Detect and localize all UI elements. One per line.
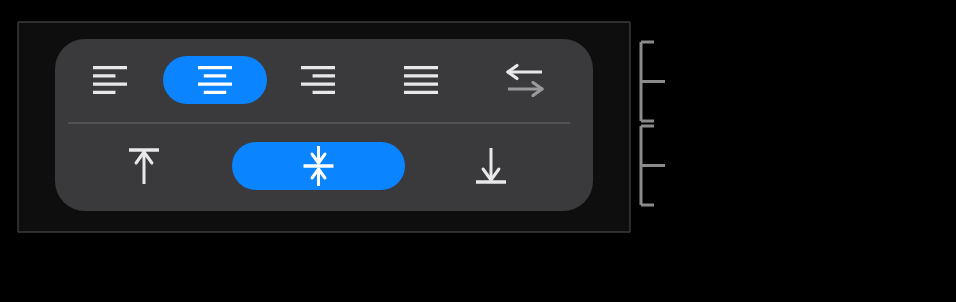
button[interactable]: Justify — [388, 56, 454, 104]
button[interactable]: Align middle — [232, 142, 405, 190]
button[interactable]: Align bottom — [458, 142, 524, 190]
button[interactable]: Align center — [163, 56, 267, 104]
button[interactable]: Align top — [111, 142, 177, 190]
button[interactable]: Text direction — [492, 56, 558, 104]
button[interactable]: Align left — [77, 56, 143, 104]
button[interactable]: Align right — [285, 56, 351, 104]
